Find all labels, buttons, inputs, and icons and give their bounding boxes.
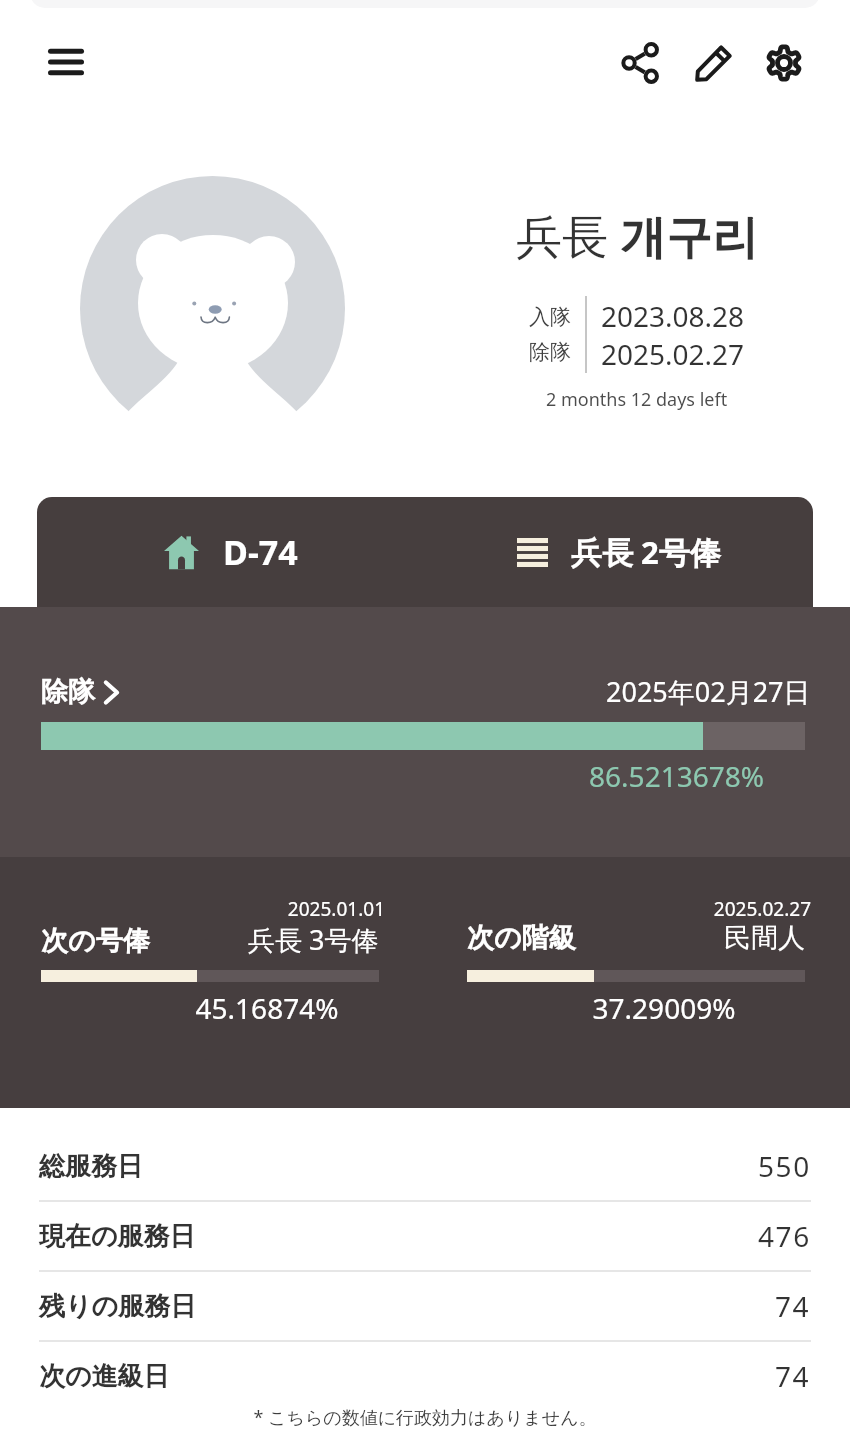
staticText: 2025.01.01 — [47, 896, 385, 922]
button[interactable]: Edit — [684, 33, 744, 93]
staticText: 残りの服務日 — [39, 1290, 197, 1323]
button[interactable]: Share — [611, 33, 671, 93]
button[interactable]: 2025.02.27 — [467, 857, 805, 1108]
staticText: 37.29009% — [495, 989, 833, 1027]
staticText: 45.16874% — [98, 989, 436, 1027]
button[interactable]: 残りの服務日 — [39, 1272, 811, 1342]
staticText: 2023.08.28 — [601, 297, 745, 335]
staticText: 550 — [758, 1147, 811, 1185]
staticText: 除隊 — [529, 339, 571, 365]
staticText: 次の進級日 — [39, 1360, 170, 1393]
staticText: 兵長 3号俸 — [248, 921, 379, 958]
staticText: 次の号俸 — [41, 924, 150, 958]
staticText: 2025.02.27 — [601, 335, 745, 373]
staticText: D-74 — [223, 529, 298, 575]
staticText: 2 months 12 days left — [546, 387, 728, 412]
staticText: 現在の服務日 — [39, 1220, 196, 1253]
button[interactable]: 兵長 2号俸 — [425, 497, 813, 607]
staticText: 개구리 — [620, 209, 758, 267]
staticText: 86.5213678% — [41, 757, 764, 795]
staticText: * こちらの数値に行政効力はありません。 — [39, 1405, 811, 1430]
button[interactable]: Settings — [754, 33, 814, 93]
button[interactable]: D-74 — [37, 497, 425, 607]
button[interactable]: Menu — [34, 30, 98, 94]
staticText: 総服務日 — [39, 1150, 143, 1183]
staticText: 次の階級 — [467, 921, 576, 955]
button[interactable]: 除隊 — [41, 675, 119, 709]
staticText: 民間人 — [724, 921, 805, 955]
staticText: 2025年02月27日 — [606, 673, 811, 710]
staticText: 476 — [758, 1217, 811, 1255]
button[interactable]: 次の進級日 — [39, 1342, 811, 1410]
staticText: 2025.02.27 — [473, 896, 811, 922]
staticText: 兵長 2号俸 — [571, 531, 721, 573]
button[interactable]: 現在の服務日 — [39, 1202, 811, 1272]
button[interactable]: 総服務日 — [39, 1132, 811, 1202]
staticText: 入隊 — [529, 304, 571, 330]
staticText: 除隊 — [41, 675, 95, 709]
staticText: 74 — [775, 1357, 811, 1395]
button[interactable]: 2025.01.01 — [41, 857, 379, 1108]
staticText: 74 — [775, 1287, 811, 1325]
staticText: 兵長 — [516, 204, 620, 267]
